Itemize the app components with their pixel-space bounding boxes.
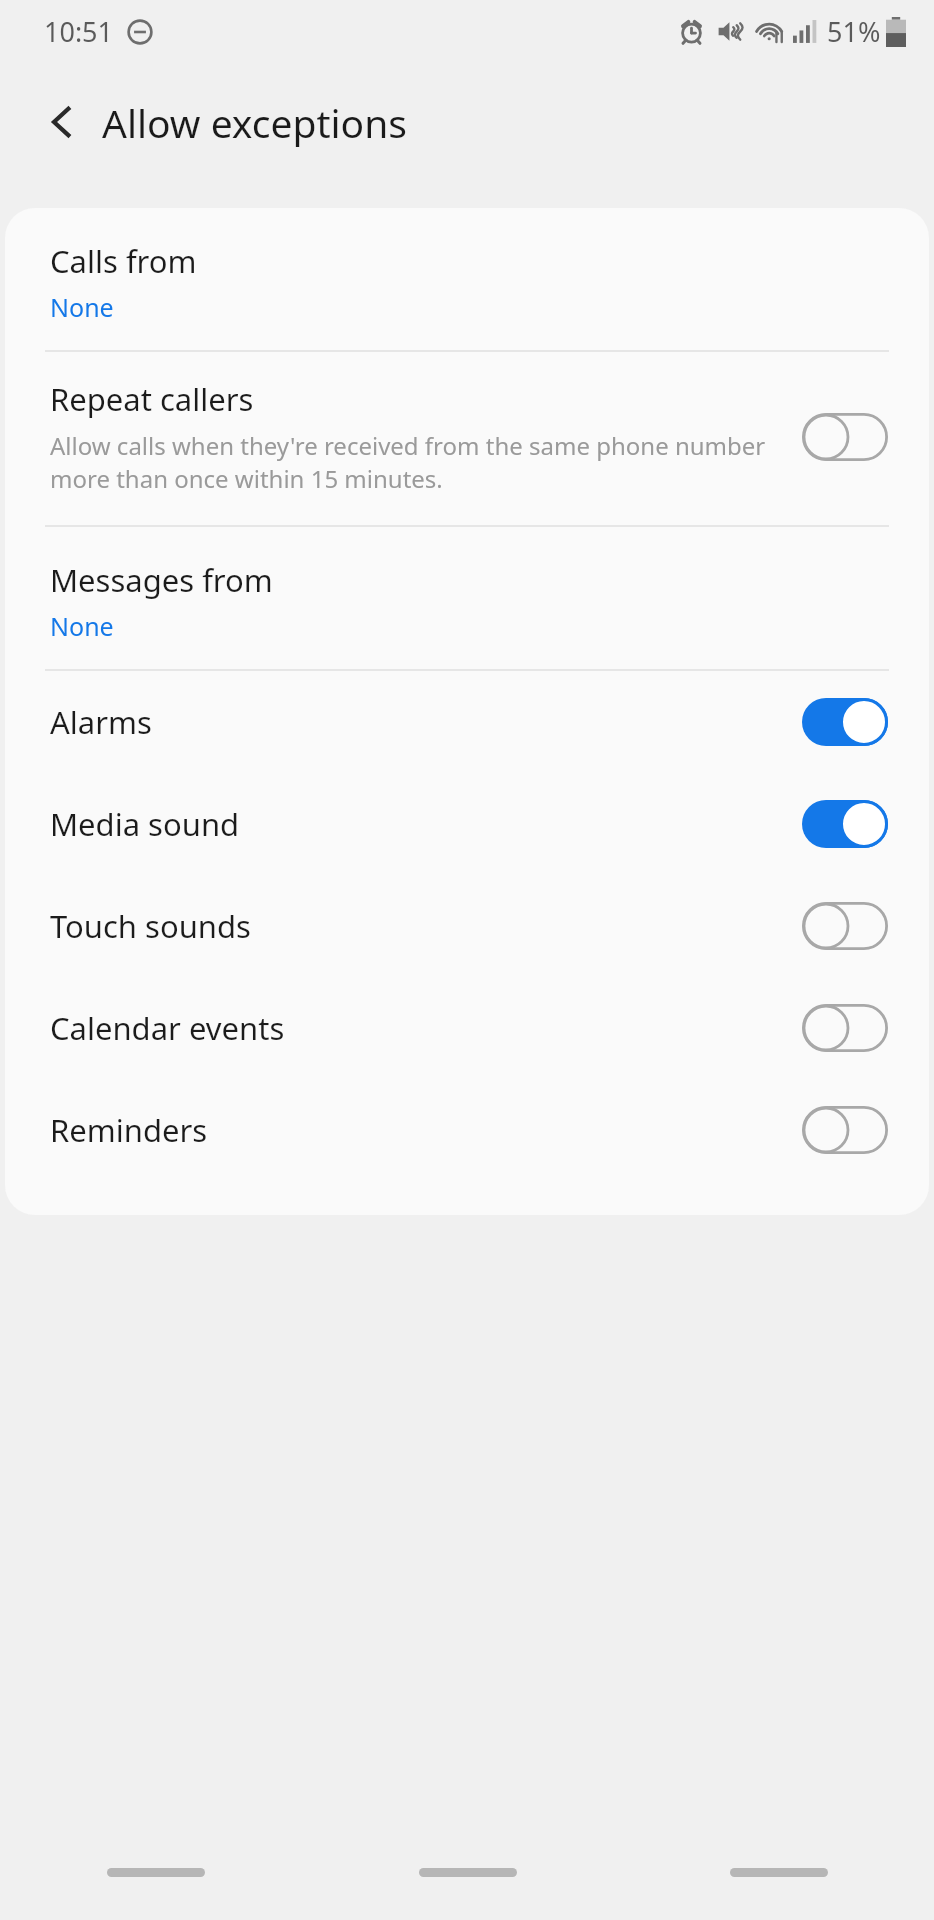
staticText: Messages from [50, 559, 273, 601]
staticText: 10:51 [44, 13, 114, 50]
button[interactable]: Home [312, 1824, 623, 1920]
button[interactable]: Reminders [5, 1079, 929, 1181]
staticText: None [50, 609, 114, 643]
button[interactable]: Off [801, 411, 889, 463]
staticText: Alarms [50, 701, 801, 743]
staticText: Reminders [50, 1109, 801, 1151]
staticText: None [50, 290, 114, 324]
button[interactable]: Back [22, 82, 102, 162]
button[interactable]: Touch sounds [5, 875, 929, 977]
button[interactable]: Calendar events [5, 977, 929, 1079]
button[interactable]: Off [801, 1104, 889, 1156]
staticText: Calls from [50, 240, 197, 282]
button[interactable]: On [801, 798, 889, 850]
staticText: Calendar events [50, 1007, 801, 1049]
button[interactable]: Recents [0, 1824, 312, 1920]
staticText: Touch sounds [50, 905, 801, 947]
staticText: Repeat callers [50, 378, 254, 420]
button[interactable]: Repeat callers [5, 352, 929, 525]
staticText: Allow calls when they're received from t… [50, 429, 771, 495]
button[interactable]: Alarms [5, 671, 929, 773]
button[interactable]: On [801, 696, 889, 748]
staticText: 51% [827, 13, 881, 50]
staticText: Media sound [50, 803, 801, 845]
button[interactable]: Calls from [5, 208, 929, 350]
button[interactable]: Off [801, 900, 889, 952]
button[interactable]: Media sound [5, 773, 929, 875]
staticText: Allow exceptions [102, 96, 407, 149]
button[interactable]: Back [623, 1824, 934, 1920]
button[interactable]: Messages from [5, 527, 929, 669]
button[interactable]: Off [801, 1002, 889, 1054]
